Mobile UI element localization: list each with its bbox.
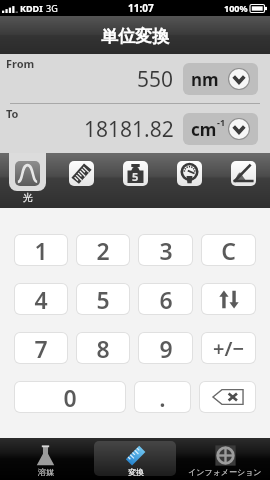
staticText: C [221, 235, 236, 265]
button[interactable]: 1 [15, 235, 67, 265]
button[interactable]: C [202, 235, 255, 265]
staticText: 8 [96, 333, 110, 363]
button[interactable]: 8 [77, 333, 129, 363]
staticText: 3 [159, 235, 173, 265]
staticText: 0 [63, 382, 77, 412]
button[interactable]: Angle [216, 153, 270, 208]
button[interactable]: 5 [77, 284, 129, 314]
staticText: 550 [137, 65, 174, 94]
button[interactable]: インフォメーション [180, 438, 270, 480]
staticText: 3G [46, 2, 58, 14]
button[interactable]: Light [0, 153, 54, 208]
button[interactable]: nm [183, 63, 258, 95]
button[interactable]: Weight [108, 153, 162, 208]
staticText: . [159, 382, 166, 412]
staticText: 7 [34, 333, 48, 363]
button[interactable]: 6 [139, 284, 192, 314]
staticText: KDDI [20, 2, 43, 14]
staticText: 6 [159, 284, 173, 314]
staticText: 100% [224, 2, 248, 14]
staticText: 5 [96, 284, 110, 314]
staticText: 18181.82 [84, 115, 174, 144]
button[interactable]: 0 [15, 382, 125, 412]
button[interactable]: 溶媒 [0, 438, 90, 480]
staticText: To [6, 106, 19, 121]
button[interactable]: 7 [15, 333, 67, 363]
staticText: 2 [96, 235, 110, 265]
staticText: 変換 [128, 467, 144, 476]
button[interactable]: Length [54, 153, 108, 208]
button[interactable]: 4 [15, 284, 67, 314]
staticText: nm [191, 68, 219, 91]
staticText: 1 [34, 235, 48, 265]
button[interactable]: Swap units [202, 284, 255, 314]
staticText: cm [191, 118, 217, 141]
staticText: 光 [23, 191, 33, 204]
button[interactable]: 3 [139, 235, 192, 265]
staticText: -1 [217, 116, 226, 128]
button[interactable]: +/− [202, 333, 255, 363]
staticText: 溶媒 [38, 467, 54, 476]
staticText: 9 [159, 333, 173, 363]
staticText: 11:07 [128, 1, 154, 15]
button[interactable]: cm [183, 113, 258, 145]
button[interactable]: 2 [77, 235, 129, 265]
button[interactable]: 9 [139, 333, 192, 363]
staticText: From [6, 56, 35, 71]
button[interactable]: Delete [200, 382, 255, 412]
staticText: +/− [213, 335, 244, 362]
staticText: 単位変換 [101, 26, 169, 47]
staticText: インフォメーション [188, 467, 262, 476]
button[interactable]: Pressure [162, 153, 216, 208]
button[interactable]: 変換 [90, 438, 180, 480]
staticText: 5 [132, 169, 139, 184]
staticText: 4 [34, 284, 48, 314]
button[interactable]: . [135, 382, 190, 412]
